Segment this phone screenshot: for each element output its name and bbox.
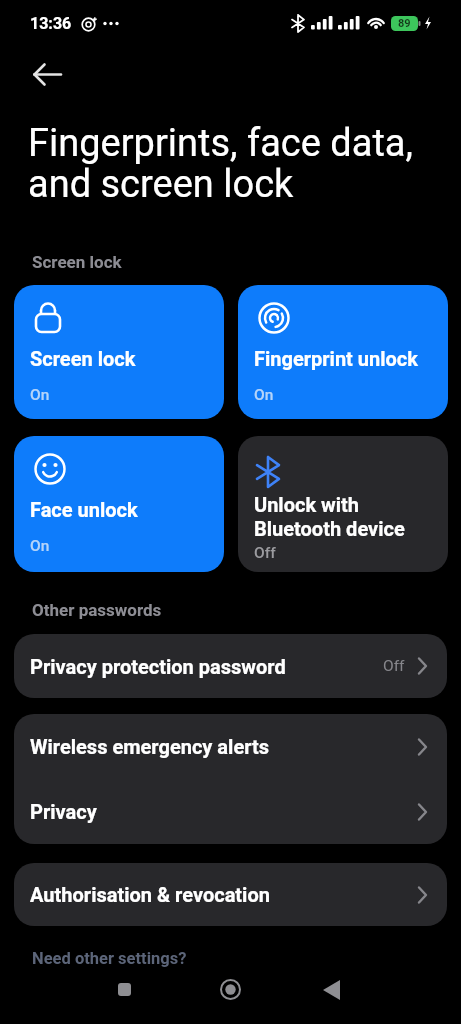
button[interactable]: Wireless emergency alerts	[14, 714, 447, 779]
staticText: Off	[254, 544, 276, 562]
staticText: On	[30, 537, 50, 555]
staticText: Privacy protection password	[30, 655, 286, 678]
staticText: Other passwords	[32, 600, 162, 620]
button[interactable]	[311, 969, 352, 1010]
staticText: Authorisation & revocation	[30, 883, 270, 906]
staticText: 89	[398, 17, 411, 30]
button[interactable]	[104, 969, 145, 1010]
staticText: 13:36	[30, 14, 72, 33]
staticText: Screen lock	[30, 347, 136, 370]
button[interactable]: Face unlock	[14, 436, 224, 572]
button[interactable]	[30, 60, 64, 88]
button[interactable]: Privacy	[14, 779, 447, 844]
staticText: Fingerprints, face data, and screen lock	[28, 121, 414, 206]
button[interactable]: Screen lock	[14, 285, 224, 419]
staticText: Off	[383, 657, 405, 675]
staticText: On	[30, 386, 50, 404]
button[interactable]: Authorisation & revocation	[14, 863, 447, 926]
staticText: Wireless emergency alerts	[30, 735, 270, 758]
staticText: Unlock with Bluetooth device	[254, 493, 405, 541]
button[interactable]: Fingerprint unlock	[238, 285, 448, 419]
staticText: On	[254, 386, 274, 404]
button[interactable]	[210, 969, 251, 1010]
staticText: Face unlock	[30, 498, 138, 521]
button[interactable]: Unlock with Bluetooth device	[238, 436, 448, 572]
staticText: Fingerprint unlock	[254, 347, 418, 370]
staticText: Need other settings?	[32, 949, 187, 968]
staticText: Privacy	[30, 800, 97, 823]
button[interactable]: Privacy protection password	[14, 634, 447, 698]
staticText: Screen lock	[32, 252, 122, 272]
